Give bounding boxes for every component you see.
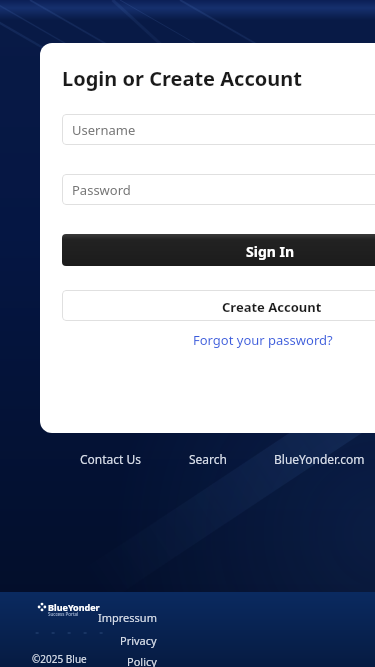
- staticText: BlueYonder: [48, 601, 100, 613]
- button[interactable]: Create Account: [62, 290, 375, 321]
- staticText: Password: [72, 181, 131, 199]
- button[interactable]: Username: [62, 114, 375, 145]
- button[interactable]: Contact Us: [80, 451, 142, 467]
- staticText: Forgot your password?: [193, 331, 333, 349]
- staticText: Create Account: [222, 298, 322, 316]
- button[interactable]: BlueYonder.com: [274, 451, 365, 467]
- button[interactable]: Sign In: [62, 234, 375, 266]
- button[interactable]: Search: [189, 451, 227, 467]
- staticText: Contact Us: [80, 451, 142, 467]
- staticText: Success Portal: [48, 611, 79, 617]
- staticText: Sign In: [246, 242, 295, 261]
- staticText: Username: [72, 121, 136, 139]
- staticText: BlueYonder.com: [274, 451, 365, 467]
- staticText: ©2025 Blue: [32, 652, 87, 666]
- button[interactable]: Password: [62, 174, 375, 205]
- staticText: Policy: [127, 654, 157, 667]
- button[interactable]: Impressum: [98, 610, 157, 625]
- staticText: Login or Create Account: [62, 65, 302, 92]
- button[interactable]: Privacy: [120, 633, 157, 648]
- staticText: Search: [189, 451, 227, 467]
- button[interactable]: Forgot your password?: [62, 331, 375, 349]
